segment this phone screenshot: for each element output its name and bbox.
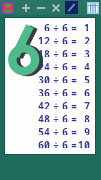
staticText: 24 [34,60,50,70]
staticText: = [71,99,77,109]
staticText: 1 [80,21,90,31]
button[interactable]: 36 [5,86,92,96]
staticText: ÷ [53,34,59,44]
staticText: 6 [34,21,50,31]
staticText: 9 [80,125,90,135]
button[interactable]: 48 [5,112,92,122]
staticText: ÷ [53,112,59,122]
staticText: = [71,73,77,83]
button[interactable]: 54 [5,125,92,135]
staticText: 6 [62,86,68,96]
button[interactable]: Multiplication [50,2,62,14]
staticText: 6 [62,138,68,148]
staticText: 6 [62,47,68,57]
staticText: = [71,34,77,44]
button[interactable]: Subtraction [35,2,47,14]
staticText: 5 [80,73,90,83]
staticText: 42 [34,99,50,109]
button[interactable]: 18 [5,47,92,57]
staticText: 6 [62,112,68,122]
staticText: ÷ [53,86,59,96]
staticText: ÷ [53,60,59,70]
staticText: = [71,21,77,31]
staticText: 54 [34,125,50,135]
button[interactable]: Division [65,1,78,14]
staticText: 60 [34,138,50,148]
staticText: = [71,47,77,57]
staticText: 6 [62,125,68,135]
staticText: 4 [80,60,90,70]
staticText: = [71,86,77,96]
staticText: ÷ [53,47,59,57]
staticText: ÷ [53,125,59,135]
staticText: 6 [80,86,90,96]
button[interactable]: Table view [86,1,99,14]
staticText: 6 [62,21,68,31]
staticText: 8 [80,112,90,122]
button[interactable]: 60 [5,138,92,148]
button[interactable]: 24 [5,60,92,70]
staticText: 30 [34,73,50,83]
staticText: = [71,60,77,70]
staticText: 12 [34,34,50,44]
staticText: = [71,112,77,122]
staticText: 7 [80,99,90,109]
staticText: 18 [34,47,50,57]
staticText: 3 [80,47,90,57]
staticText: 6 [62,99,68,109]
staticText: 48 [34,112,50,122]
button[interactable]: 42 [5,99,92,109]
staticText: 6 [62,60,68,70]
staticText: 10 [77,138,90,148]
staticText: 6 [62,73,68,83]
staticText: 36 [34,86,50,96]
staticText: = [71,138,77,148]
button[interactable]: 6 [5,21,92,31]
staticText: ÷ [53,138,59,148]
staticText: ÷ [53,99,59,109]
staticText: ÷ [53,21,59,31]
staticText: 2 [80,34,90,44]
button[interactable]: App icon [2,2,14,14]
button[interactable]: 30 [5,73,92,83]
button[interactable]: 12 [5,34,92,44]
staticText: = [71,125,77,135]
staticText: 6 [62,34,68,44]
staticText: ÷ [53,73,59,83]
button[interactable]: Addition [20,2,32,14]
